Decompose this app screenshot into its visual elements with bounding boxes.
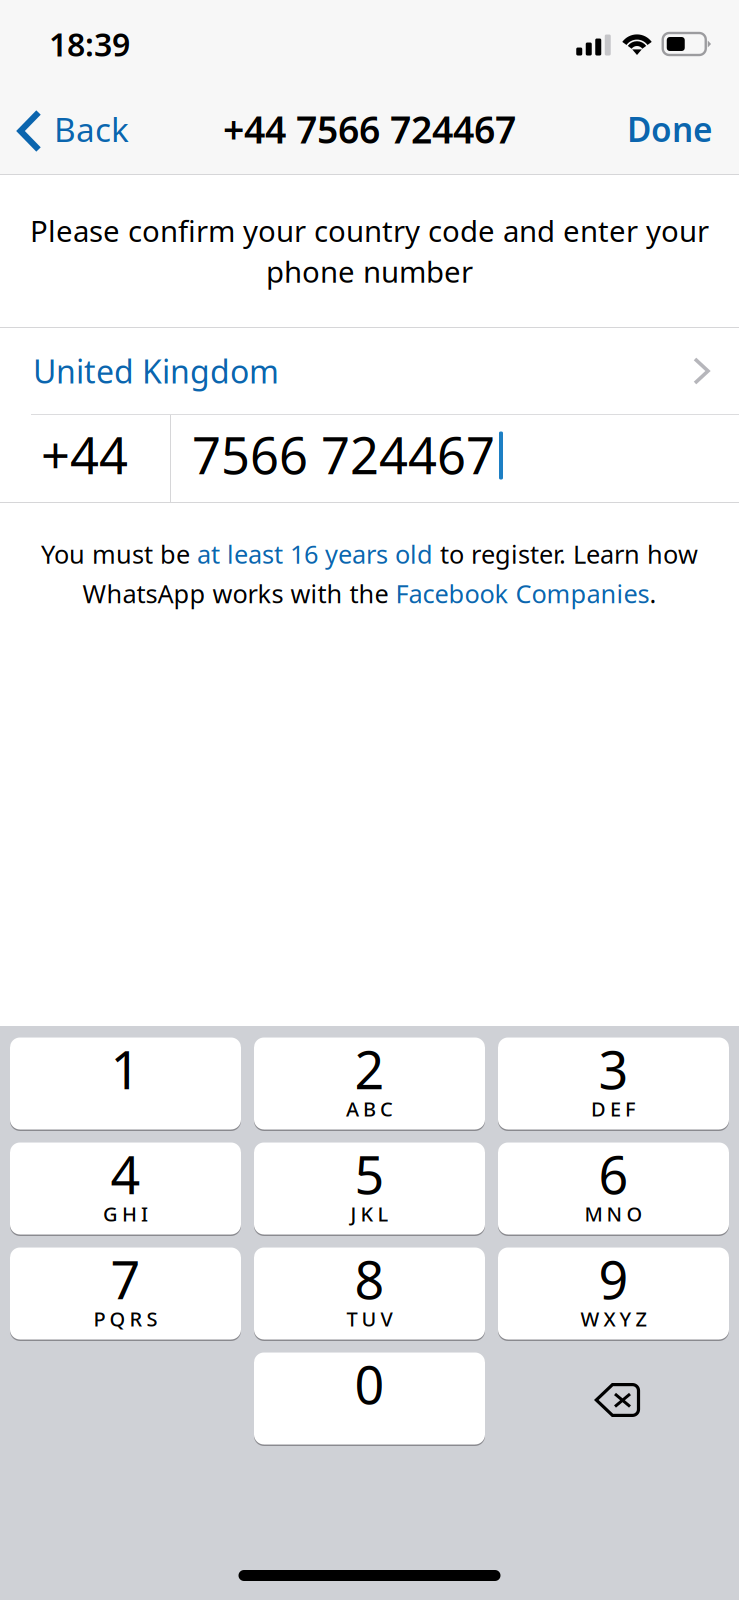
staticText: JKL	[350, 1200, 388, 1227]
staticText: 7566 724467	[192, 421, 495, 488]
button[interactable]: 9	[498, 1249, 729, 1341]
staticText: ABC	[346, 1095, 393, 1122]
staticText: You must be	[41, 537, 197, 571]
button[interactable]: Back	[0, 88, 143, 174]
button[interactable]: 4	[10, 1144, 241, 1236]
button[interactable]: 1	[10, 1039, 241, 1131]
staticText: 5	[354, 1139, 384, 1209]
button[interactable]: 8	[254, 1249, 485, 1341]
staticText: .	[649, 577, 656, 610]
staticText: 8	[354, 1244, 384, 1314]
staticText: 6	[598, 1139, 628, 1209]
staticText: 1	[110, 1034, 140, 1104]
button[interactable]: Delete	[498, 1354, 729, 1446]
button[interactable]: 7	[10, 1249, 241, 1341]
staticText: PQRS	[93, 1305, 157, 1332]
staticText: Back	[54, 107, 129, 151]
button[interactable]: 6	[498, 1144, 729, 1236]
staticText: GHI	[103, 1200, 148, 1227]
staticText: Facebook Companies	[395, 577, 649, 610]
staticText: 4	[110, 1139, 140, 1209]
staticText: WhatsApp works with the	[82, 577, 395, 610]
staticText: 7	[110, 1244, 140, 1314]
staticText: at least 16 years old	[197, 537, 433, 571]
staticText: 3	[598, 1034, 628, 1104]
staticText: DEF	[591, 1095, 636, 1122]
staticText: +44 7566 724467	[223, 104, 516, 154]
staticText: Done	[627, 107, 713, 151]
button[interactable]: Done	[601, 88, 739, 174]
staticText: 18:39	[49, 23, 130, 65]
staticText: TUV	[346, 1305, 392, 1332]
button[interactable]: United Kingdom	[0, 328, 739, 414]
staticText: +44	[41, 421, 128, 488]
button[interactable]: 0	[254, 1354, 485, 1446]
staticText: 0	[354, 1349, 384, 1419]
button[interactable]: 3	[498, 1039, 729, 1131]
staticText: phone number	[266, 252, 473, 291]
staticText: 2	[354, 1034, 384, 1104]
staticText: 9	[598, 1244, 628, 1314]
staticText: WXYZ	[580, 1305, 646, 1332]
staticText: MNO	[584, 1200, 642, 1227]
button[interactable]: 5	[254, 1144, 485, 1236]
button[interactable]: 2	[254, 1039, 485, 1131]
staticText: United Kingdom	[33, 350, 279, 392]
staticText: Please confirm your country code and ent…	[30, 211, 709, 250]
staticText: to register. Learn how	[433, 537, 698, 571]
